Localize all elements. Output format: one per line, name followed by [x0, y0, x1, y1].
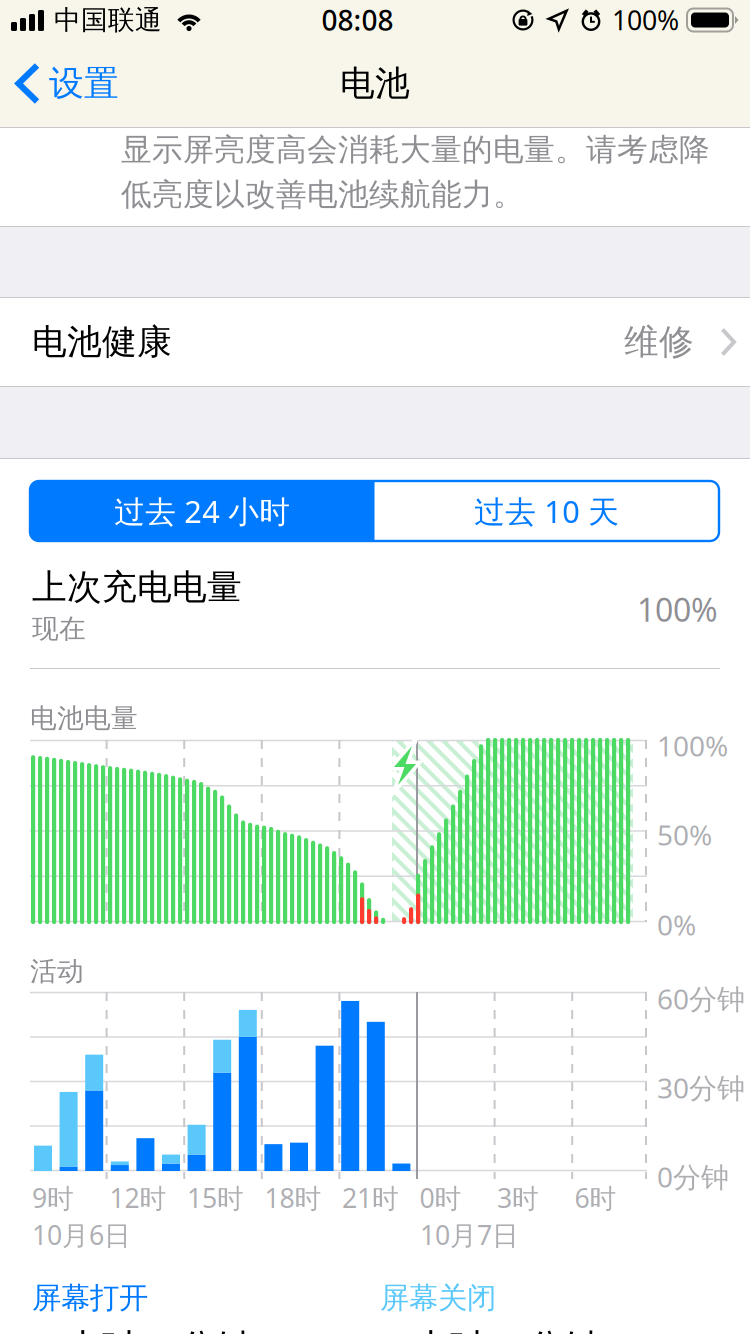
staticText: 现在 [32, 613, 86, 645]
staticText: 3时 [497, 1180, 539, 1215]
staticText: 0时 [419, 1180, 461, 1215]
staticText: 21时 [342, 1180, 399, 1215]
staticText: 6时 [574, 1180, 616, 1215]
button[interactable]: 过去 24 小时 [30, 481, 374, 541]
staticText: 设置 [49, 62, 119, 105]
staticText: 18时 [264, 1180, 321, 1215]
staticText: 显示屏亮度高会消耗大量的电量。请考虑降 [121, 131, 710, 169]
staticText: 10月6日 [32, 1217, 131, 1252]
button[interactable]: 设置 [0, 40, 119, 127]
staticText: 维修 [624, 321, 694, 363]
staticText: 60分钟 [657, 980, 745, 1017]
staticText: 上次充电电量 [32, 566, 242, 609]
staticText: 低亮度以改善电池续航能力。 [121, 176, 524, 213]
staticText: 12时 [109, 1180, 166, 1215]
staticText: 屏幕关闭 [380, 1280, 496, 1316]
staticText: 10月7日 [420, 1217, 519, 1252]
staticText: 100% [637, 588, 718, 630]
staticText: 08:08 [321, 1, 393, 39]
staticText: 4 小时55分钟 [32, 1322, 253, 1334]
button[interactable]: 过去 10 天 [374, 481, 719, 541]
staticText: 15时 [187, 1180, 244, 1215]
staticText: 过去 24 小时 [114, 491, 290, 531]
staticText: 100% [612, 2, 679, 38]
staticText: 中国联通 [54, 4, 162, 36]
staticText: 0% [657, 906, 696, 943]
staticText: 过去 10 天 [474, 491, 619, 531]
staticText: 电池 [340, 62, 410, 105]
staticText: 50% [657, 816, 712, 853]
staticText: 活动 [30, 955, 84, 988]
staticText: 屏幕打开 [32, 1280, 148, 1316]
staticText: 30分钟 [657, 1069, 745, 1106]
staticText: 9时 [32, 1180, 74, 1215]
staticText: 电池健康 [32, 321, 172, 363]
staticText: 0分钟 [657, 1158, 729, 1195]
staticText: 100% [657, 727, 728, 764]
staticText: 1 小时15分钟 [380, 1322, 601, 1334]
staticText: 电池电量 [30, 702, 138, 735]
button[interactable]: 电池健康 [0, 298, 750, 386]
